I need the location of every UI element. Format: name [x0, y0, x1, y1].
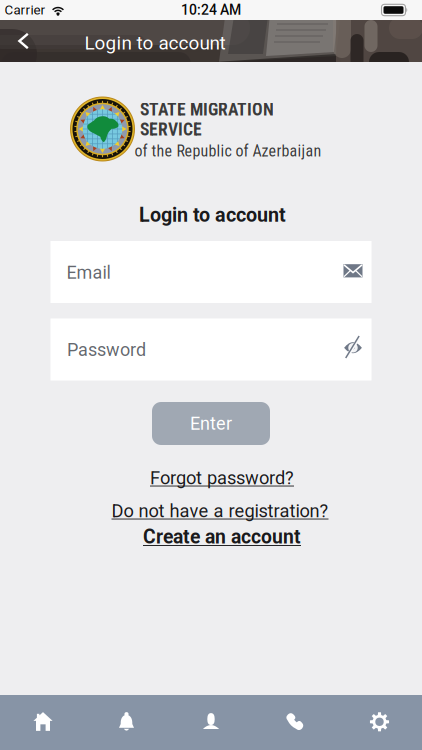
button[interactable]: Call [253, 694, 337, 749]
button[interactable]: Home [1, 694, 85, 749]
staticText: Email [66, 262, 110, 283]
staticText: Password [67, 339, 146, 360]
button[interactable]: Enter [152, 402, 270, 445]
button[interactable]: Back [0, 20, 47, 62]
staticText: Login to account [139, 203, 286, 226]
staticText: of the Republic of Azerbaijan [134, 142, 321, 160]
staticText: Create an account [143, 526, 301, 548]
button[interactable]: Settings [337, 694, 421, 749]
staticText: Forgot password? [150, 467, 294, 489]
button[interactable]: Create an account [143, 526, 301, 548]
staticText: STATE MIGRATION [140, 99, 274, 120]
staticText: Login to account [84, 32, 225, 54]
staticText: SERVICE [140, 119, 202, 140]
button[interactable]: Do not have a registration? [111, 500, 328, 522]
staticText: Do not have a registration? [111, 500, 328, 522]
button[interactable]: Forgot password? [150, 467, 294, 489]
staticText: Carrier [4, 2, 45, 18]
button[interactable]: Notifications [84, 695, 168, 750]
staticText: 10:24 AM [181, 2, 241, 18]
button[interactable]: Profile [169, 693, 253, 748]
staticText: Enter [190, 413, 232, 434]
